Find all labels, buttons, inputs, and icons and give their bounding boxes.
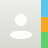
button[interactable]: Contact photo xyxy=(0,0,41,48)
